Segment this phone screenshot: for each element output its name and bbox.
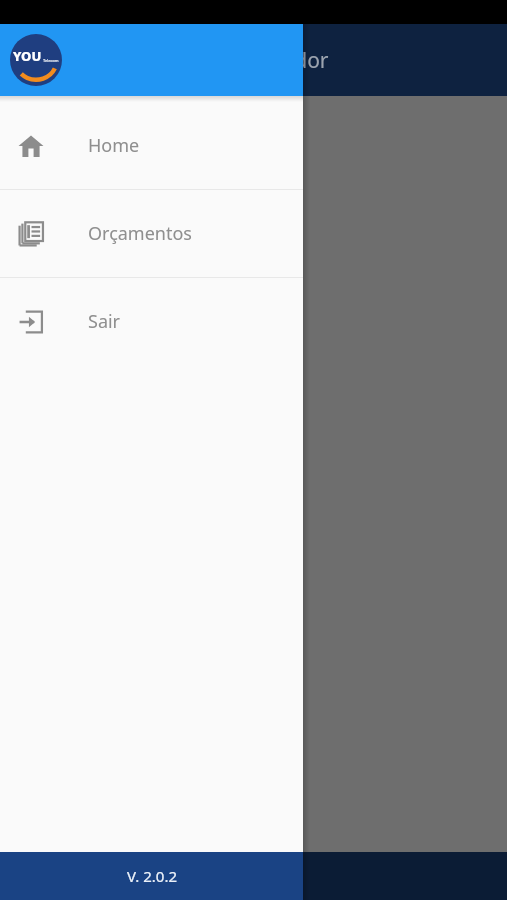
staticText: V. 2.0.2	[127, 866, 177, 886]
staticText: Home	[88, 133, 140, 158]
button[interactable]: Orçamentos	[0, 190, 303, 277]
staticText: Telecom	[43, 58, 59, 63]
staticText: Orçamentos	[88, 221, 192, 246]
button[interactable]: More options	[298, 148, 308, 170]
button[interactable]: Home	[0, 102, 303, 189]
staticText: Prestador	[232, 46, 329, 75]
staticText: YOU	[13, 47, 42, 65]
button[interactable]: V. 2.0.2	[0, 852, 303, 900]
button[interactable]: Sair	[0, 278, 303, 365]
staticText: Sair	[88, 309, 121, 334]
